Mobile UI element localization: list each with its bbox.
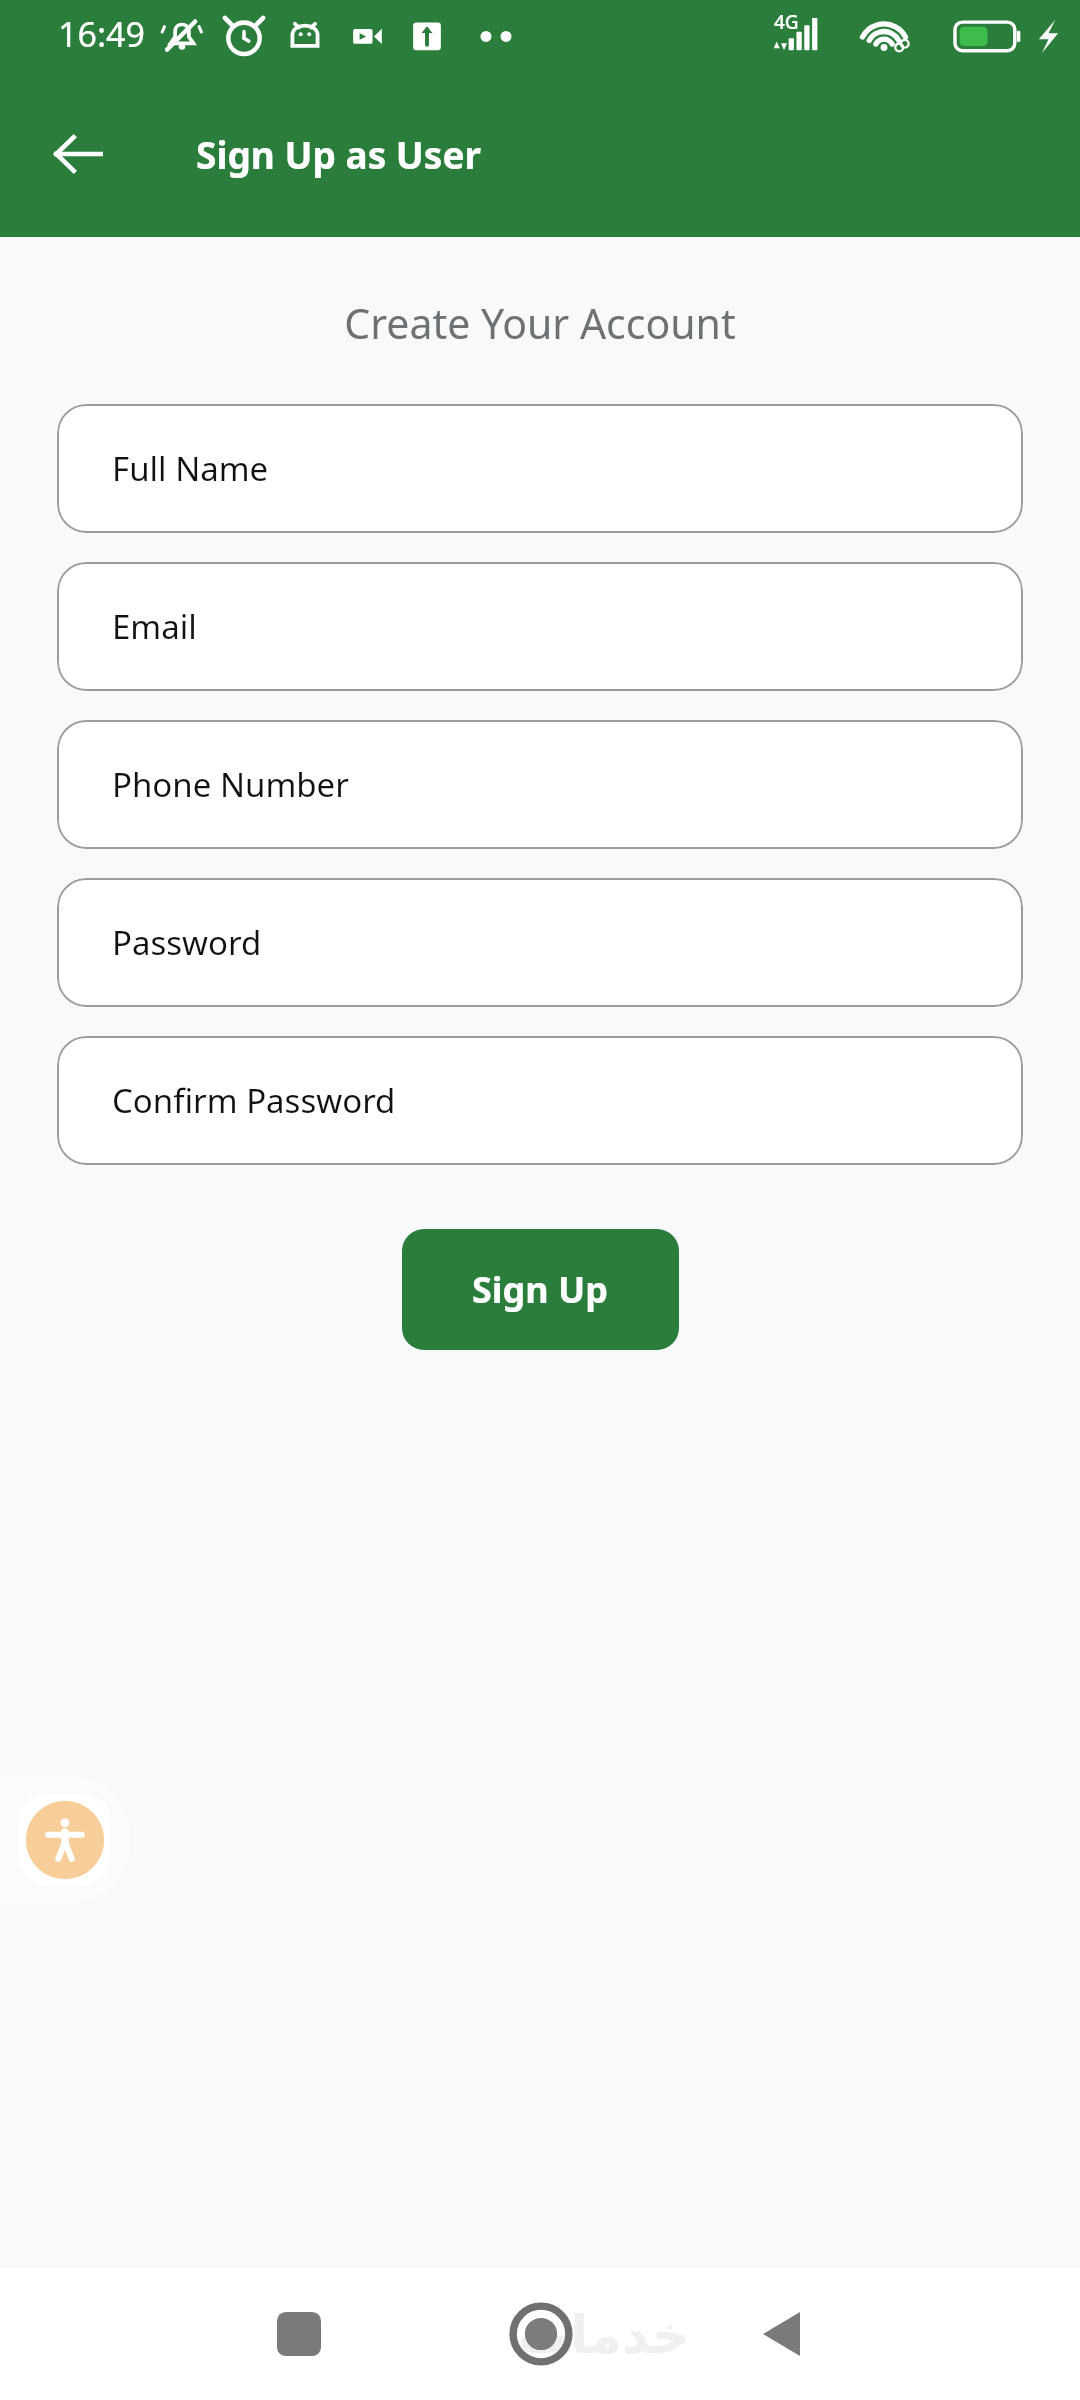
staticText: خدمات [518,2305,690,2366]
button[interactable]: Back [36,112,120,196]
staticText: 4G [774,9,799,35]
button[interactable]: Password [57,878,1023,1007]
staticText: Phone Number [112,762,349,807]
staticText: Create Your Account [0,295,1080,351]
staticText: Email [112,604,197,649]
button[interactable]: Email [57,562,1023,691]
button[interactable]: Full Name [57,404,1023,533]
staticText: Confirm Password [112,1078,396,1123]
staticText: Sign Up as User [196,129,482,179]
button[interactable]: Sign Up [402,1229,679,1350]
staticText: Sign Up [472,1265,609,1314]
button[interactable]: Back [730,2279,840,2389]
button[interactable]: Home [486,2279,596,2389]
button[interactable]: Accessibility menu [0,1775,131,1904]
staticText: Password [112,920,262,965]
button[interactable]: Phone Number [57,720,1023,849]
staticText: 16:49 [58,11,145,57]
button[interactable]: Confirm Password [57,1036,1023,1165]
staticText: Full Name [112,446,269,491]
button[interactable]: Recent apps [244,2279,354,2389]
